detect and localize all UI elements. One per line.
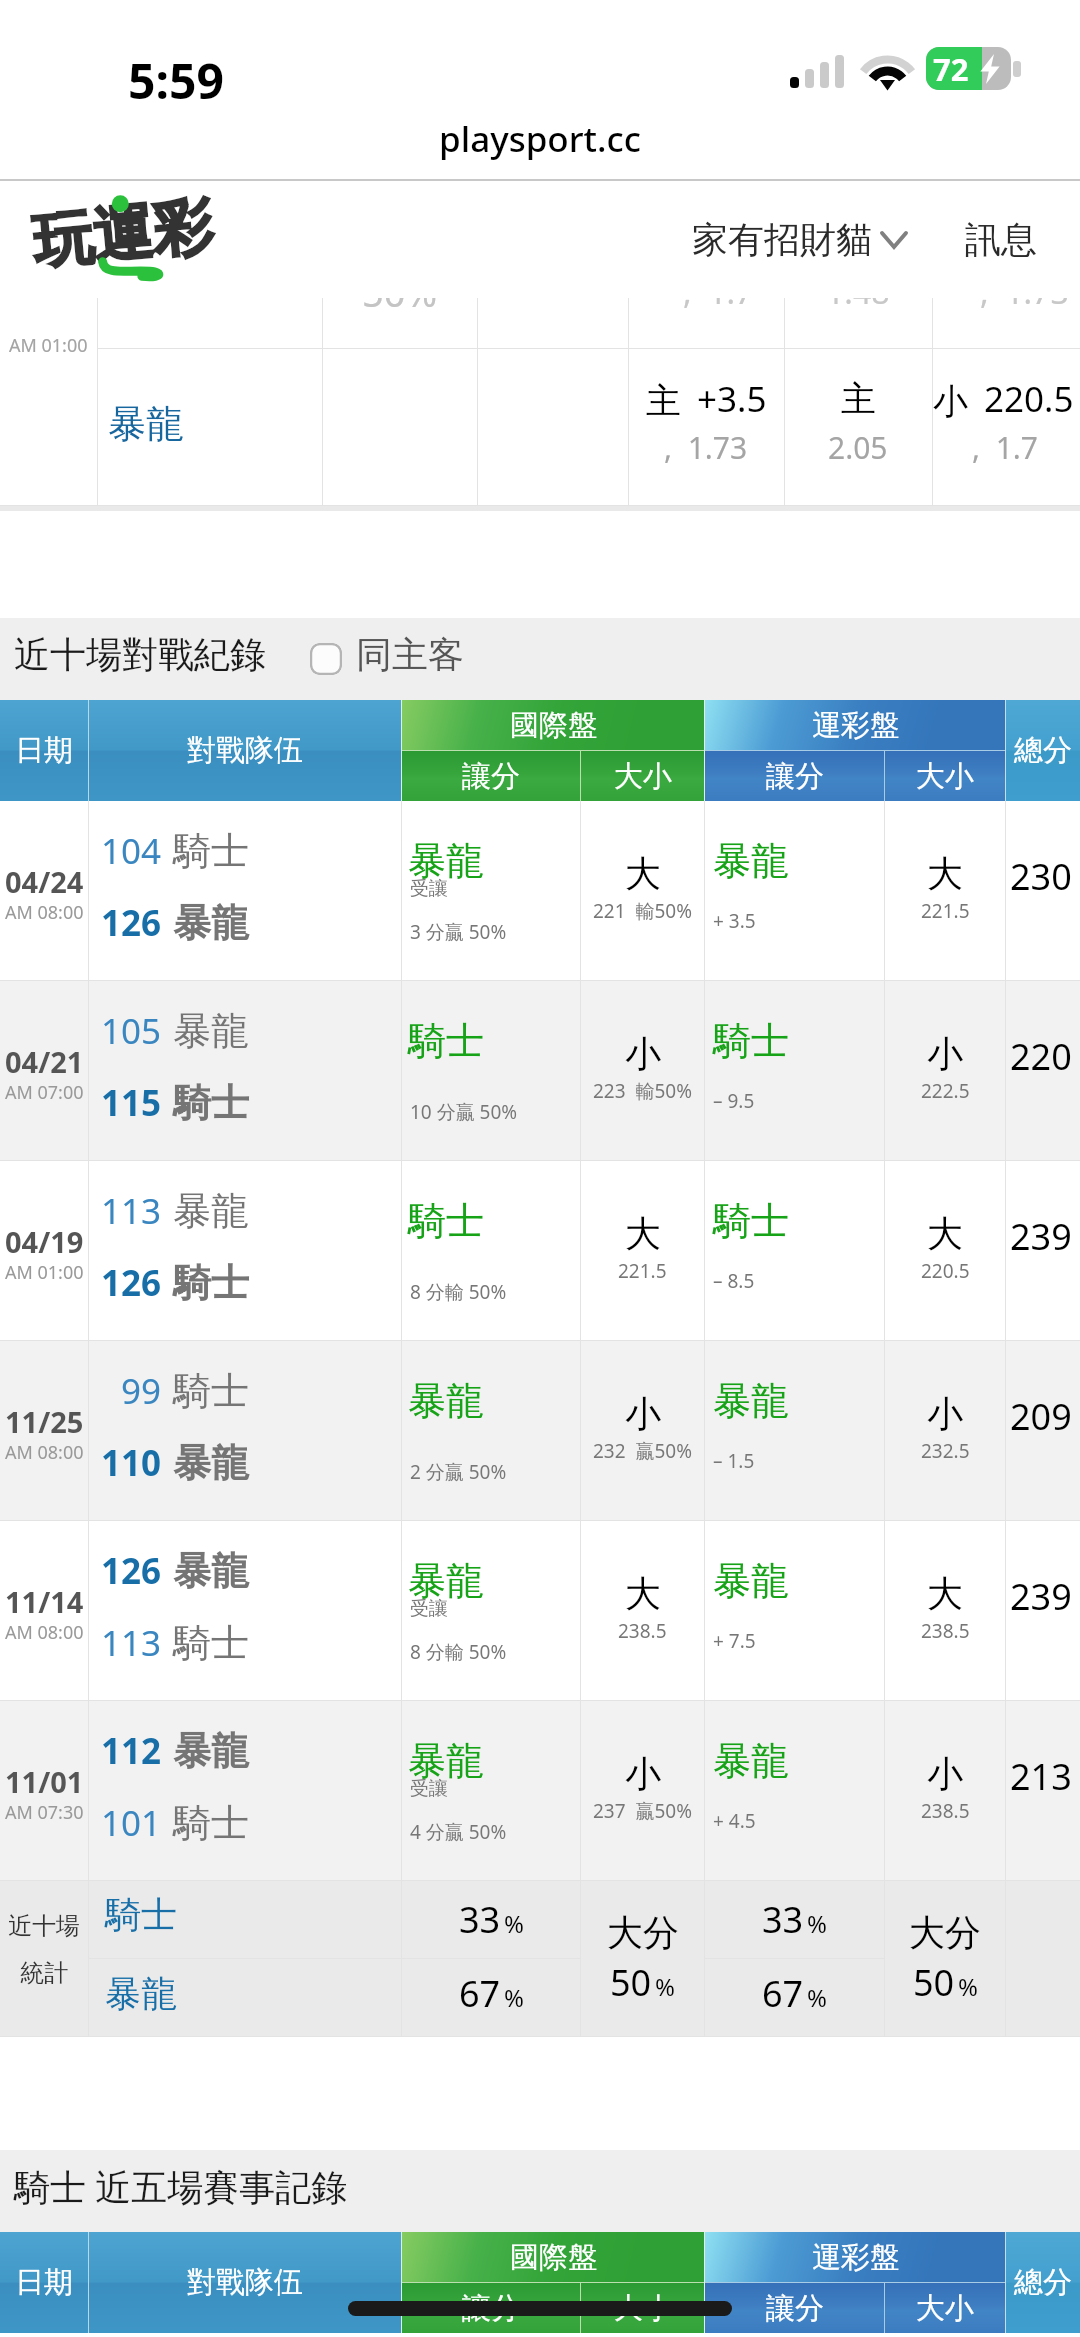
staticText: 暴龍 [173,1439,249,1487]
button[interactable]: 暴龍 [713,1557,789,1605]
button[interactable]: 126 [87,1547,249,1595]
staticText: AM 08:00 [5,1620,84,1645]
button[interactable]: 113 [87,1619,249,1667]
staticText: 2.05 [828,427,888,468]
staticText: , 1.73 [980,298,1069,314]
staticText: – 1.5 [713,1448,755,1474]
button[interactable]: 暴龍 [408,837,484,885]
staticText: 小 [927,1751,963,1796]
button[interactable]: 104 [87,827,249,875]
staticText: 8 分輸 50% [410,1639,507,1665]
button[interactable]: 騎士 [713,1017,789,1065]
staticText: % [504,1981,524,2014]
staticText: 67 [762,1969,804,2018]
staticText: 騎士 [173,1367,249,1415]
staticText: 50 [913,1958,955,2007]
staticText: 騎士 [408,1017,484,1065]
staticText: 大 [625,851,661,896]
staticText: 小 [625,1391,661,1436]
button[interactable]: 99 [87,1367,249,1415]
staticText: 國際盤 [510,2239,597,2276]
staticText: 大 [927,1571,963,1616]
staticText: 223 輸50% [593,1078,693,1104]
staticText: 126 [87,899,161,947]
button[interactable]: 騎士 [713,1197,789,1245]
button[interactable]: 騎士 [408,1017,484,1065]
button[interactable]: 同主客 [302,632,464,677]
button[interactable]: 暴龍 [105,1971,177,2016]
button[interactable]: 暴龍 [408,1377,484,1425]
staticText: 受讓 [410,877,448,901]
staticText: 222.5 [921,1078,970,1104]
staticText: 105 [87,1007,161,1055]
staticText: % [655,1970,675,2003]
button[interactable]: 玩運彩 home [37,201,233,277]
staticText: 暴龍 [408,1557,484,1605]
button[interactable]: 家有招財貓 [686,205,912,274]
staticText: 騎士 [173,1619,249,1667]
staticText: 1.48 [826,298,890,314]
staticText: 運彩盤 [812,707,899,744]
staticText: 總分 [1014,732,1072,769]
staticText: 10 分贏 50% [410,1099,518,1125]
staticText: 11/14 [5,1582,84,1621]
staticText: 主 [841,377,876,421]
staticText: 220.5 [984,375,1074,423]
staticText: 101 [87,1799,161,1847]
button[interactable]: 暴龍 [408,1557,484,1605]
button[interactable]: 110 [87,1439,249,1487]
staticText: 騎士 [173,1259,249,1307]
staticText: 讓分 [462,758,520,795]
button[interactable]: 126 [87,899,249,947]
staticText: 50 [610,1958,652,2007]
staticText: 騎士 [408,1197,484,1245]
button[interactable]: 113 [87,1187,249,1235]
staticText: AM 01:00 [5,1260,84,1285]
staticText: % [504,1907,524,1940]
staticText: 大小 [614,758,672,795]
staticText: AM 07:30 [5,1800,84,1825]
staticText: 騎士 [173,1799,249,1847]
staticText: 日期 [15,2264,73,2301]
staticText: 暴龍 [173,1007,249,1055]
staticText: 總分 [1014,2264,1072,2301]
button[interactable]: 暴龍 [713,1377,789,1425]
button[interactable]: 暴龍 [108,400,184,448]
button[interactable]: 115 [87,1079,249,1127]
staticText: 暴龍 [408,1737,484,1785]
button[interactable]: 騎士 [408,1197,484,1245]
staticText: 國際盤 [510,707,597,744]
staticText: 暴龍 [173,1547,249,1595]
staticText: 112 [87,1727,161,1775]
staticText: 騎士 [173,1079,249,1127]
button[interactable]: 暴龍 [408,1737,484,1785]
staticText: 221 輸50% [593,898,693,924]
staticText: 大小 [916,758,974,795]
button[interactable]: 126 [87,1259,249,1307]
staticText: 2 分贏 50% [410,1459,507,1485]
staticText: 04/24 [5,862,84,901]
button[interactable]: 105 [87,1007,249,1055]
staticText: 家有招財貓 [692,217,872,262]
button[interactable]: 騎士 [105,1892,177,1937]
staticText: 同主客 [356,632,464,677]
button[interactable]: 暴龍 [713,837,789,885]
staticText: 小 [625,1751,661,1796]
staticText: 暴龍 [408,1377,484,1425]
button[interactable]: 101 [87,1799,249,1847]
staticText: 3 分贏 50% [410,919,507,945]
staticText: 238.5 [921,1798,970,1824]
button[interactable]: 暴龍 [713,1737,789,1785]
staticText: 220.5 [921,1258,970,1284]
staticText: 大小 [916,2290,974,2327]
staticText: 220 [1010,1032,1072,1081]
staticText: AM 08:00 [5,900,84,925]
staticText: 5:59 [128,48,224,113]
staticText: 大 [625,1211,661,1256]
button[interactable]: 訊息 [959,205,1043,274]
staticText: 近十場 [8,1911,80,1941]
staticText: 小 [625,1031,661,1076]
staticText: 67 [459,1969,501,2018]
button[interactable]: 112 [87,1727,249,1775]
staticText: 暴龍 [713,1737,789,1785]
